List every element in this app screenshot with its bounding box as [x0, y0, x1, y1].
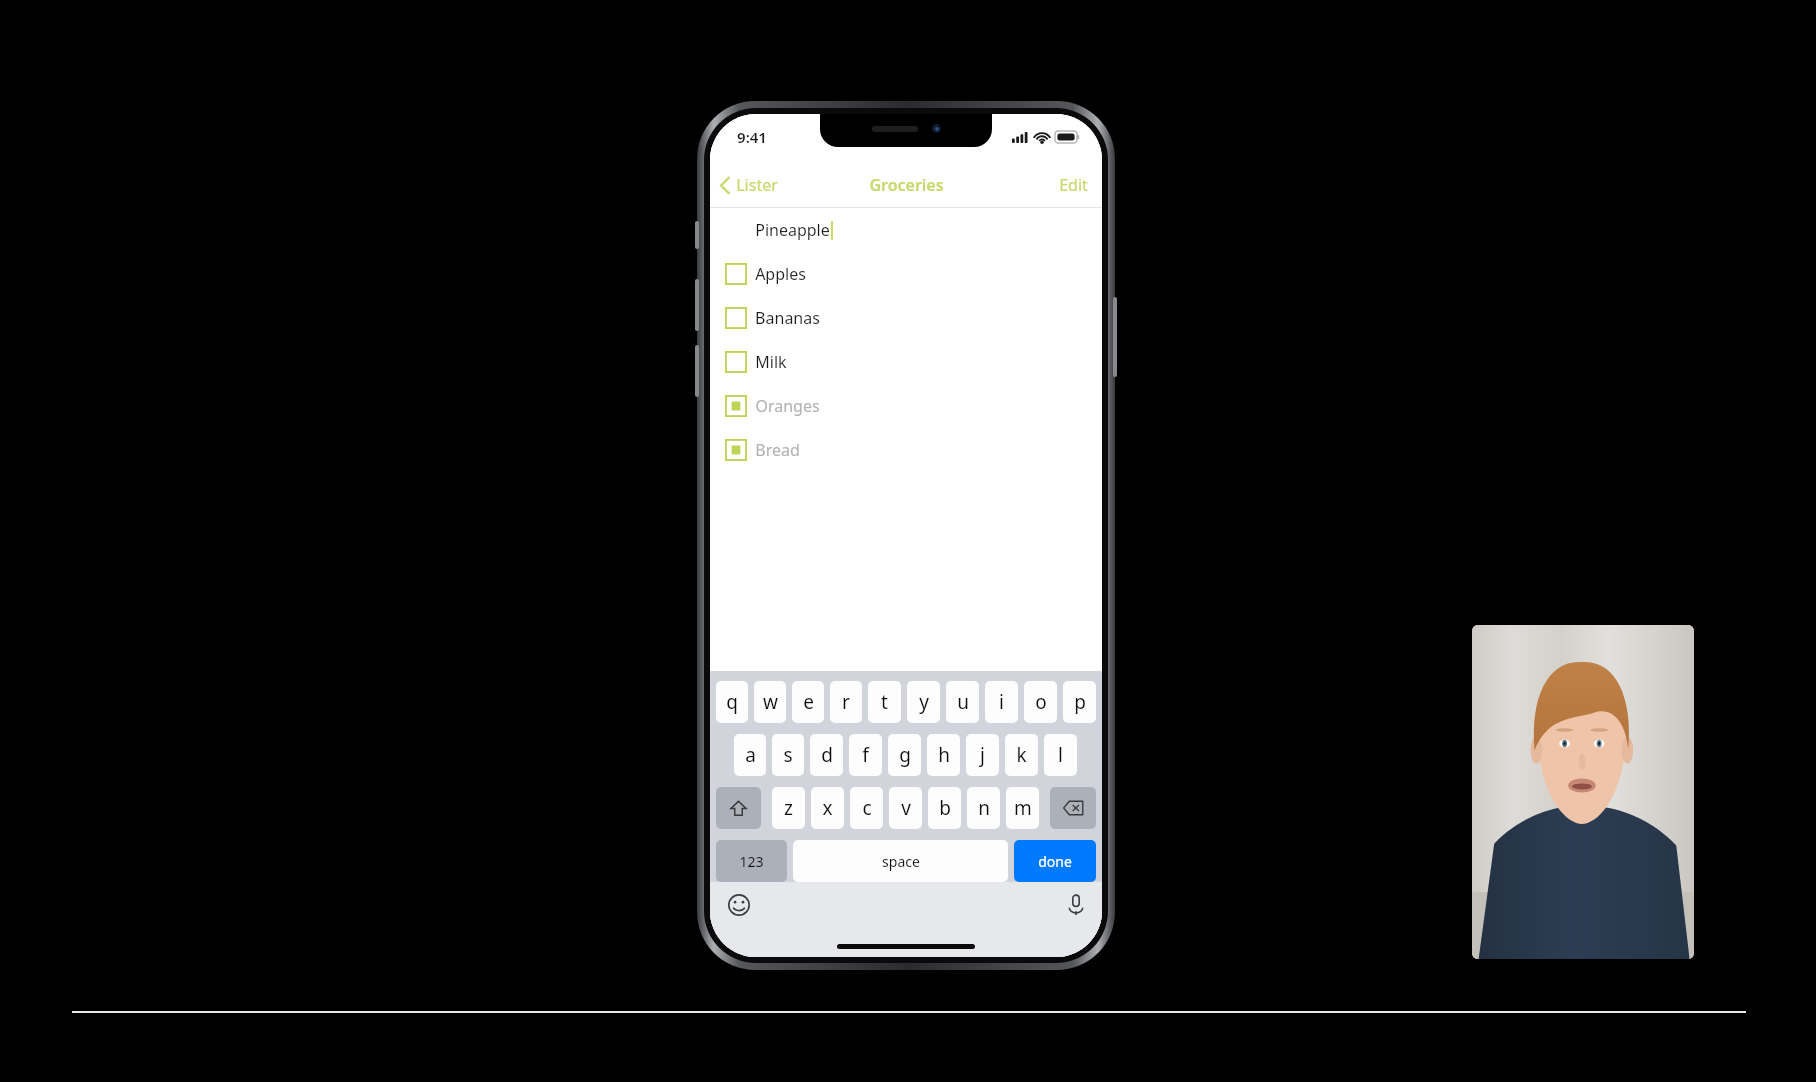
- button[interactable]: z: [772, 787, 805, 829]
- button[interactable]: Bananas: [710, 296, 1102, 340]
- button[interactable]: Lister: [710, 168, 790, 202]
- staticText: t: [881, 689, 888, 715]
- staticText: Groceries: [869, 174, 944, 196]
- button[interactable]: Shift: [716, 787, 761, 829]
- staticText: n: [978, 795, 990, 821]
- button[interactable]: n: [967, 787, 1000, 829]
- button[interactable]: Apples: [710, 252, 1102, 296]
- staticText: Pineapple: [755, 219, 830, 241]
- button[interactable]: x: [811, 787, 844, 829]
- staticText: 9:41: [737, 127, 767, 147]
- staticText: k: [1016, 742, 1027, 768]
- button[interactable]: q: [716, 681, 748, 723]
- staticText: d: [821, 742, 833, 768]
- staticText: c: [862, 795, 872, 821]
- staticText: y: [919, 689, 929, 715]
- button[interactable]: space: [793, 840, 1008, 882]
- staticText: u: [957, 689, 969, 715]
- button[interactable]: 123: [716, 840, 787, 882]
- staticText: Bread: [755, 439, 800, 461]
- button[interactable]: u: [946, 681, 979, 723]
- staticText: l: [1058, 742, 1063, 768]
- button[interactable]: o: [1024, 681, 1057, 723]
- button[interactable]: f: [849, 734, 882, 776]
- button[interactable]: c: [850, 787, 883, 829]
- button[interactable]: h: [927, 734, 960, 776]
- staticText: r: [842, 689, 850, 715]
- button[interactable]: p: [1063, 681, 1096, 723]
- button[interactable]: done: [1014, 840, 1096, 882]
- button[interactable]: Dictation: [1062, 888, 1090, 922]
- staticText: s: [783, 742, 793, 768]
- staticText: e: [803, 689, 814, 715]
- staticText: Lister: [736, 174, 778, 196]
- staticText: f: [862, 742, 869, 768]
- staticText: x: [822, 795, 833, 821]
- button[interactable]: i: [985, 681, 1018, 723]
- button[interactable]: s: [772, 734, 804, 776]
- button[interactable]: Oranges: [710, 384, 1102, 428]
- staticText: 123: [739, 852, 764, 871]
- staticText: q: [726, 689, 738, 715]
- button[interactable]: g: [888, 734, 921, 776]
- button[interactable]: b: [928, 787, 961, 829]
- button[interactable]: Edit: [1045, 168, 1102, 202]
- button[interactable]: r: [830, 681, 862, 723]
- staticText: z: [784, 795, 793, 821]
- staticText: g: [899, 742, 911, 768]
- button[interactable]: Pineapple: [710, 208, 1102, 252]
- staticText: m: [1014, 795, 1032, 821]
- button[interactable]: v: [889, 787, 922, 829]
- staticText: o: [1035, 689, 1047, 715]
- button[interactable]: k: [1005, 734, 1038, 776]
- staticText: Oranges: [755, 395, 820, 417]
- staticText: j: [980, 742, 985, 768]
- button[interactable]: Bread: [710, 428, 1102, 472]
- button[interactable]: a: [734, 734, 766, 776]
- button[interactable]: y: [907, 681, 940, 723]
- staticText: space: [882, 852, 920, 871]
- staticText: Edit: [1059, 174, 1088, 196]
- button[interactable]: l: [1044, 734, 1077, 776]
- staticText: Bananas: [755, 307, 820, 329]
- button[interactable]: d: [810, 734, 843, 776]
- button[interactable]: m: [1006, 787, 1039, 829]
- staticText: b: [939, 795, 951, 821]
- button[interactable]: Backspace: [1050, 787, 1096, 829]
- staticText: i: [999, 689, 1004, 715]
- staticText: v: [901, 795, 911, 821]
- staticText: Milk: [755, 351, 787, 373]
- button[interactable]: e: [792, 681, 824, 723]
- staticText: h: [938, 742, 950, 768]
- button[interactable]: t: [868, 681, 901, 723]
- staticText: p: [1074, 689, 1086, 715]
- staticText: w: [763, 689, 778, 715]
- button[interactable]: Milk: [710, 340, 1102, 384]
- button[interactable]: w: [754, 681, 786, 723]
- staticText: Apples: [755, 263, 806, 285]
- button[interactable]: Emoji keyboard: [722, 888, 756, 922]
- staticText: done: [1038, 852, 1072, 871]
- button[interactable]: j: [966, 734, 999, 776]
- staticText: a: [745, 742, 756, 768]
